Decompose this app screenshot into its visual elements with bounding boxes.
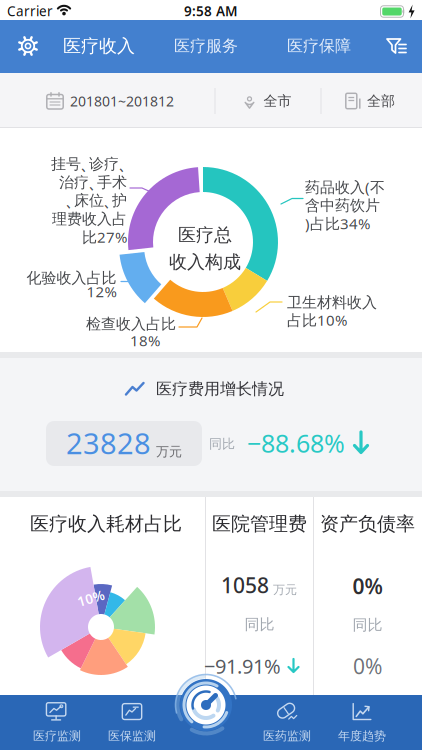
staticText: 23828 [66,423,151,463]
button[interactable]: 全市 [240,91,291,110]
staticText: 医保监测 [108,728,156,743]
staticText: 收入构成 [169,251,241,273]
staticText: 10% [77,589,105,607]
staticText: ､床位､护 [66,191,127,210]
staticText: 医疗收入 [63,35,135,57]
button[interactable]: 医疗服务 [174,36,238,56]
staticText: 检查收入占比 [86,315,176,333]
staticText: 万元 [156,443,182,460]
staticText: 全市 [263,92,291,110]
staticText: 资产负债率 [320,512,415,536]
button[interactable]: 设置 [16,34,40,58]
staticText: −91.91% [204,652,281,680]
staticText: 医疗监测 [33,728,81,743]
staticText: 医院管理费 [212,512,307,536]
button[interactable]: 医疗收入 [63,35,135,57]
staticText: 同比 [244,615,274,634]
staticText: 0% [352,572,382,600]
staticText: 1058 [221,571,269,599]
button[interactable]: 筛选 [386,38,408,58]
staticText: 化验收入占比 [26,269,116,287]
staticText: 201801~201812 [70,91,174,111]
staticText: 卫生材料收入 [287,293,377,312]
staticText: 占比10% [287,310,347,330]
staticText: )占比34% [305,213,370,234]
staticText: 含中药饮片 [305,196,380,215]
button[interactable]: 仪表盘 [168,667,244,743]
staticText: 18% [130,330,160,351]
staticText: 医疗收入耗材占比 [30,512,182,536]
button[interactable]: 医疗保障 [287,36,351,56]
staticText: 医疗保障 [287,36,351,56]
staticText: 全部 [367,92,395,110]
staticText: 药品收入(不 [305,177,385,197]
staticText: 医疗总 [178,224,232,246]
staticText: 医疗服务 [174,36,238,56]
staticText: −88.68% [247,426,345,460]
staticText: Carrier [7,2,53,20]
staticText: 万元 [273,582,297,597]
staticText: 同比 [352,616,382,634]
button[interactable]: 201801~201812 [46,91,174,111]
staticText: 同比 [209,436,235,452]
staticText: 挂号､诊疗､ [51,155,127,173]
button[interactable]: 全部 [345,92,395,110]
staticText: 治疗､手术 [59,173,127,192]
staticText: 9:58 AM [184,2,238,20]
staticText: 理费收入占 [52,210,127,228]
staticText: 年度趋势 [338,728,386,743]
button[interactable]: 医保监测 [95,697,169,747]
staticText: 0% [353,652,382,680]
staticText: 医疗费用增长情况 [156,379,284,399]
button[interactable]: 年度趋势 [325,697,399,747]
button[interactable]: 医药监测 [250,697,324,747]
staticText: 比27% [82,227,127,247]
staticText: 12% [86,281,116,302]
staticText: 医药监测 [263,728,311,743]
button[interactable]: 医疗监测 [20,697,94,747]
